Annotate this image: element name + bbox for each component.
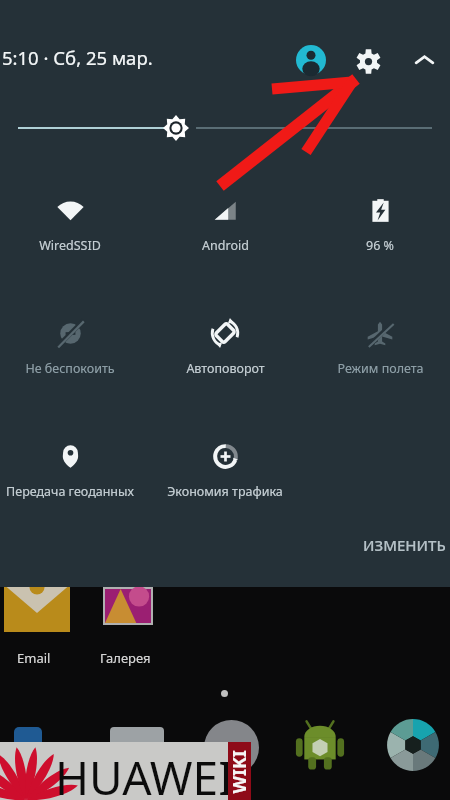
button[interactable]: Автоповорот [150, 318, 300, 377]
button[interactable]: 96 % [305, 195, 450, 254]
staticText: HUAWEI [55, 746, 234, 800]
staticText: WIKI [226, 749, 251, 793]
button[interactable]: Передача геоданных [0, 441, 145, 500]
button[interactable]: Не беспокоить [0, 318, 145, 377]
staticText: Галерея [100, 649, 151, 667]
button[interactable]: Phone [14, 727, 42, 779]
staticText: Режим полета [337, 360, 424, 377]
staticText: Email [17, 649, 51, 667]
button[interactable]: Email [4, 587, 70, 632]
button[interactable]: Brightness [162, 114, 190, 142]
staticText: Автоповорот [186, 360, 265, 377]
staticText: 96 % [366, 237, 394, 254]
staticText: Android [202, 237, 249, 254]
staticText: WiredSSID [39, 237, 101, 254]
button[interactable]: Android [150, 195, 300, 254]
button[interactable]: Режим полета [305, 318, 450, 377]
button[interactable]: User account [291, 40, 331, 80]
button[interactable]: Settings [348, 41, 388, 81]
staticText: ИЗМЕНИТЬ [363, 535, 446, 555]
button[interactable]: Browser [204, 720, 259, 775]
staticText: Передача геоданных [6, 483, 134, 500]
button[interactable]: Экономия трафика [150, 441, 300, 500]
button[interactable]: Collapse panel [406, 42, 442, 78]
button[interactable]: Gallery [105, 589, 151, 623]
button[interactable]: Messages [110, 727, 164, 777]
button[interactable]: Camera [386, 718, 440, 772]
button[interactable]: WiredSSID [0, 195, 145, 254]
staticText: Экономия трафика [167, 483, 283, 500]
button[interactable]: ИЗМЕНИТЬ [357, 531, 450, 559]
staticText: 5:10 · Сб, 25 мар. [2, 45, 153, 70]
staticText: Не беспокоить [25, 360, 115, 377]
button[interactable]: Android app [289, 715, 351, 777]
